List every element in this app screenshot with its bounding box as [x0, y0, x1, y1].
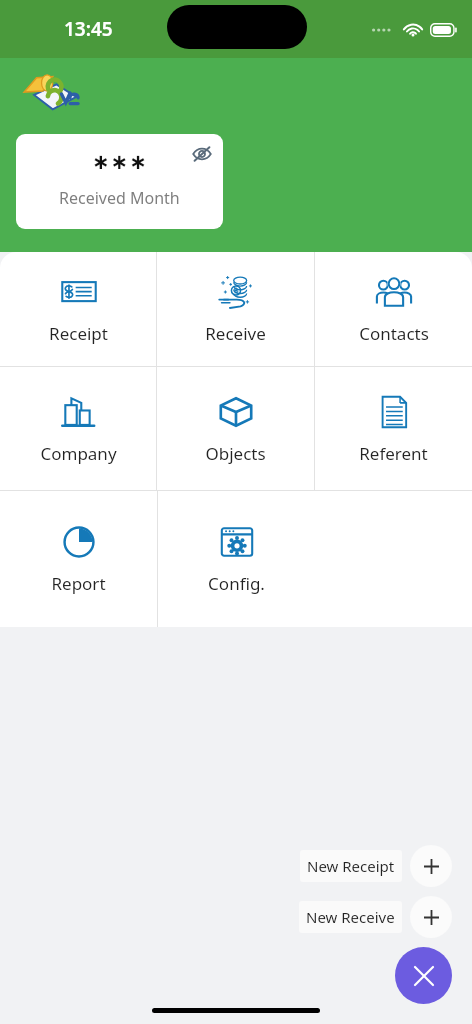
- button[interactable]: Hide amount: [189, 141, 215, 167]
- button[interactable]: New Receive: [299, 901, 402, 933]
- staticText: Config.: [208, 572, 265, 595]
- button[interactable]: New Receipt: [300, 850, 402, 882]
- button[interactable]: Contacts: [315, 252, 472, 366]
- button[interactable]: Config.: [158, 491, 315, 627]
- staticText: Objects: [205, 442, 266, 465]
- button[interactable]: New Receipt: [410, 845, 452, 887]
- button[interactable]: Receive: [157, 252, 314, 366]
- staticText: Referent: [359, 442, 428, 465]
- staticText: Report: [51, 572, 106, 595]
- button[interactable]: Report: [0, 491, 157, 627]
- staticText: ∗∗∗: [92, 150, 148, 174]
- staticText: Received Month: [59, 187, 180, 209]
- button[interactable]: ∗∗∗: [16, 134, 223, 229]
- button[interactable]: New Receive: [410, 896, 452, 938]
- staticText: Contacts: [359, 322, 429, 345]
- staticText: New Receipt: [307, 856, 395, 876]
- button[interactable]: Objects: [157, 367, 314, 490]
- button[interactable]: Close menu: [395, 947, 452, 1004]
- staticText: Receipt: [49, 322, 108, 345]
- button[interactable]: Referent: [315, 367, 472, 490]
- staticText: Company: [40, 442, 117, 465]
- button[interactable]: Company: [0, 367, 156, 490]
- staticText: 13:45: [64, 16, 113, 42]
- staticText: New Receive: [306, 907, 395, 927]
- staticText: Receive: [205, 322, 266, 345]
- button[interactable]: Receipt: [0, 252, 156, 366]
